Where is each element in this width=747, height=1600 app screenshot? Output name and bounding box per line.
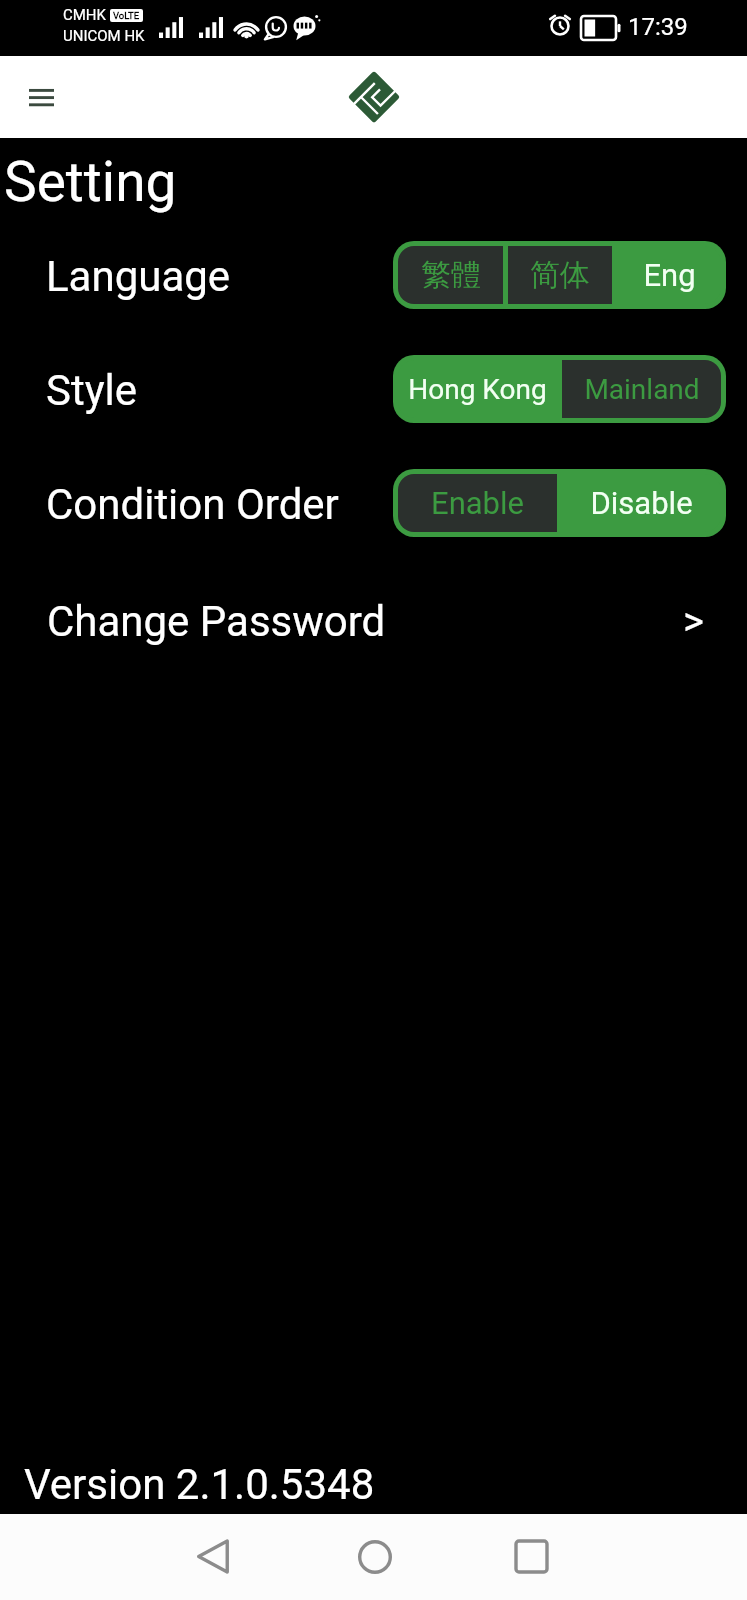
- staticText: Eng: [643, 257, 696, 293]
- button[interactable]: 简体: [508, 246, 612, 304]
- staticText: >: [683, 598, 704, 645]
- staticText: Change Password: [47, 597, 386, 646]
- staticText: 17:39: [628, 13, 688, 41]
- staticText: Mainland: [584, 373, 700, 406]
- staticText: VoLTE: [113, 10, 140, 21]
- button[interactable]: Disable: [562, 474, 721, 532]
- button[interactable]: Enable: [398, 474, 557, 532]
- button[interactable]: Back: [184, 1526, 245, 1587]
- staticText: Setting: [4, 150, 177, 214]
- button[interactable]: 繁體: [398, 246, 503, 304]
- button[interactable]: Hong Kong: [398, 360, 557, 418]
- staticText: Language: [46, 252, 231, 301]
- staticText: UNICOM HK: [63, 27, 145, 45]
- staticText: Style: [46, 366, 138, 415]
- staticText: Enable: [431, 485, 524, 521]
- staticText: Hong Kong: [408, 373, 547, 406]
- button[interactable]: Eng: [617, 246, 721, 304]
- staticText: 繁體: [421, 256, 481, 294]
- staticText: Version 2.1.0.5348: [24, 1460, 375, 1509]
- staticText: Condition Order: [46, 480, 339, 529]
- button[interactable]: Change Password: [0, 587, 747, 655]
- button[interactable]: Menu: [17, 73, 65, 121]
- staticText: 简体: [530, 256, 590, 294]
- button[interactable]: Home: [344, 1526, 405, 1587]
- staticText: CMHK: [63, 6, 106, 24]
- button[interactable]: Recent apps: [501, 1526, 562, 1587]
- staticText: Disable: [590, 485, 693, 521]
- button[interactable]: Mainland: [562, 360, 721, 418]
